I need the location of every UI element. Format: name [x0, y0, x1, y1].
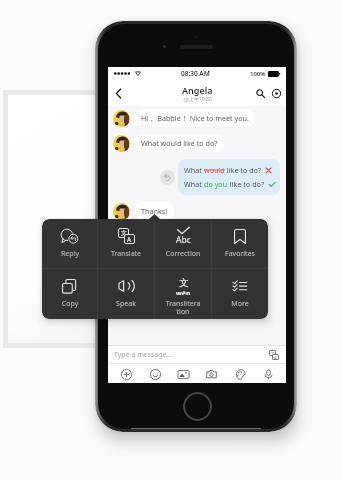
staticText: 文	[121, 229, 127, 237]
staticText: A	[127, 235, 132, 244]
staticText: wén	[176, 289, 191, 295]
button[interactable]: Back	[111, 86, 125, 100]
button[interactable]: More	[212, 269, 268, 319]
staticText: 08:30 AM	[181, 69, 210, 78]
staticText: More	[220, 299, 260, 309]
button[interactable]: 文	[155, 269, 211, 319]
staticText: Type a message...	[114, 350, 173, 360]
button[interactable]: Search	[253, 86, 267, 100]
button[interactable]: Translate	[268, 349, 280, 361]
staticText: would	[204, 165, 225, 175]
staticText: Reply	[50, 249, 90, 259]
staticText: do you	[204, 179, 228, 189]
button[interactable]: Copy	[42, 269, 97, 319]
button[interactable]: Favorites	[212, 219, 268, 268]
button[interactable]: Settings	[269, 86, 283, 100]
staticText: 100%	[250, 70, 266, 78]
staticText: Thanks!	[141, 206, 168, 216]
staticText: What	[184, 179, 204, 189]
button[interactable]: Sticker	[233, 367, 247, 381]
button[interactable]: Emoji	[148, 367, 162, 381]
staticText: like to do?	[228, 179, 265, 189]
staticText: Translate	[106, 249, 146, 259]
staticText: What would like to do?	[141, 138, 218, 148]
staticText: Speak	[106, 299, 146, 309]
staticText: Copy	[50, 299, 90, 309]
staticText: Hi， Babbie！ Nice to meet you.	[141, 113, 249, 123]
staticText: A	[274, 355, 277, 360]
button[interactable]: Abc	[155, 219, 211, 268]
staticText: 文	[271, 351, 275, 356]
staticText: 上午10:30	[189, 96, 212, 103]
button[interactable]: Gallery	[176, 367, 190, 381]
staticText: Angela	[182, 84, 213, 96]
button[interactable]: Speak	[98, 269, 154, 319]
button[interactable]: Voice	[261, 367, 275, 381]
staticText: Favorites	[220, 249, 260, 259]
button[interactable]: Camera	[204, 367, 218, 381]
button[interactable]: 文	[98, 219, 154, 268]
staticText: What	[184, 165, 204, 175]
staticText: Transliteration	[165, 299, 201, 315]
button[interactable]: Reply	[42, 219, 97, 268]
staticText: Abc	[176, 234, 191, 245]
staticText: like to do?	[225, 165, 262, 175]
staticText: 文	[179, 277, 189, 289]
staticText: Correction	[159, 249, 207, 259]
button[interactable]: Add	[119, 367, 133, 381]
